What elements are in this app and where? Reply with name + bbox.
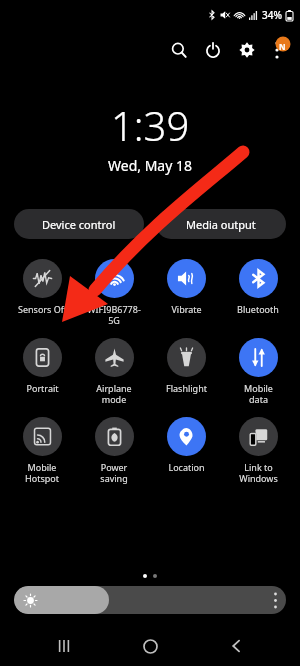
button[interactable]: Mobile data	[222, 336, 294, 407]
button[interactable]: Search	[162, 33, 196, 67]
button[interactable]: Mobile Hotspot	[6, 415, 78, 486]
button[interactable]: Bluetooth	[222, 257, 294, 317]
button[interactable]: Link to Windows	[222, 415, 294, 486]
button[interactable]: Flashlight	[150, 336, 222, 396]
button[interactable]: Device control	[14, 209, 144, 239]
staticText: Link to Windows	[239, 461, 278, 484]
staticText: Flashlight	[166, 382, 207, 394]
staticText: Vibrate	[171, 303, 202, 315]
button[interactable]: Brightness	[14, 586, 286, 614]
button[interactable]: More options	[264, 35, 294, 65]
button[interactable]: Power off	[196, 33, 230, 67]
button[interactable]: Portrait	[6, 336, 78, 396]
staticText: Bluetooth	[237, 303, 279, 315]
button[interactable]: Power saving	[78, 415, 150, 486]
staticText: N	[279, 41, 286, 52]
button[interactable]: Airplane mode	[78, 336, 150, 407]
button[interactable]: Media output	[156, 209, 286, 239]
button[interactable]: Home	[128, 626, 172, 666]
staticText: Device control	[42, 217, 116, 232]
staticText: Power saving	[100, 461, 128, 484]
staticText: WIFI9B6778- 5G	[87, 303, 141, 326]
button[interactable]: Settings	[230, 33, 264, 67]
staticText: 1:39	[111, 98, 190, 152]
button[interactable]: Location	[150, 415, 222, 475]
button[interactable]: Recents	[42, 626, 86, 666]
staticText: Airplane mode	[96, 382, 132, 405]
staticText: Sensors Off	[18, 303, 67, 315]
staticText: Media output	[186, 217, 256, 232]
staticText: Portrait	[26, 382, 59, 394]
button[interactable]: WIFI9B6778- 5G	[78, 257, 150, 328]
staticText: Wed, May 18	[108, 156, 192, 175]
staticText: Mobile Hotspot	[25, 461, 59, 484]
button[interactable]: Vibrate	[150, 257, 222, 317]
button[interactable]: Back	[214, 626, 258, 666]
staticText: Location	[168, 461, 205, 473]
staticText: Mobile data	[244, 382, 273, 405]
button[interactable]: Sensors Off	[6, 257, 78, 317]
staticText: 34%	[262, 8, 282, 22]
